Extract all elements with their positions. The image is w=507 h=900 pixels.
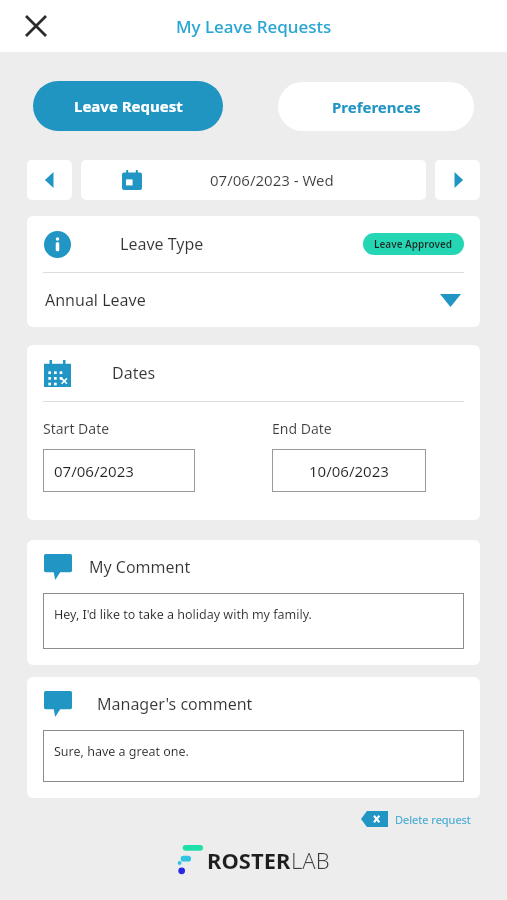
staticText: Delete request	[395, 812, 471, 827]
button[interactable]: Next day	[435, 160, 480, 200]
button[interactable]: Previous day	[27, 160, 72, 200]
button[interactable]: Delete request	[361, 811, 471, 827]
button[interactable]: 07/06/2023	[43, 449, 195, 492]
staticText: LAB	[291, 845, 330, 875]
button[interactable]: 07/06/2023 - Wed	[81, 160, 426, 200]
staticText: 10/06/2023	[309, 461, 389, 481]
staticText: Leave Request	[74, 96, 183, 116]
button[interactable]: Sure, have a great one.	[43, 730, 464, 782]
button[interactable]: Hey, I'd like to take a holiday with my …	[43, 593, 464, 649]
staticText: ROSTER	[207, 845, 291, 875]
staticText: Manager's comment	[97, 693, 253, 715]
staticText: Leave Approved	[374, 237, 453, 251]
staticText: My Comment	[89, 556, 191, 578]
button[interactable]: Preferences	[278, 82, 474, 131]
staticText: Sure, have a great one.	[54, 743, 189, 760]
staticText: My Leave Requests	[176, 15, 332, 38]
button[interactable]: 10/06/2023	[272, 449, 426, 492]
staticText: 07/06/2023	[54, 461, 134, 481]
button[interactable]: Annual Leave	[27, 273, 480, 327]
staticText: Annual Leave	[45, 289, 146, 311]
staticText: Start Date	[43, 419, 110, 438]
staticText: Leave Type	[120, 233, 204, 255]
staticText: Dates	[112, 362, 156, 384]
button[interactable]: Leave Approved	[363, 233, 464, 255]
staticText: Preferences	[332, 97, 421, 117]
staticText: 07/06/2023 - Wed	[210, 170, 334, 190]
staticText: End Date	[272, 419, 332, 438]
button[interactable]: Leave Request	[33, 81, 223, 131]
button[interactable]: Close	[14, 4, 58, 48]
staticText: Hey, I'd like to take a holiday with my …	[54, 606, 312, 623]
